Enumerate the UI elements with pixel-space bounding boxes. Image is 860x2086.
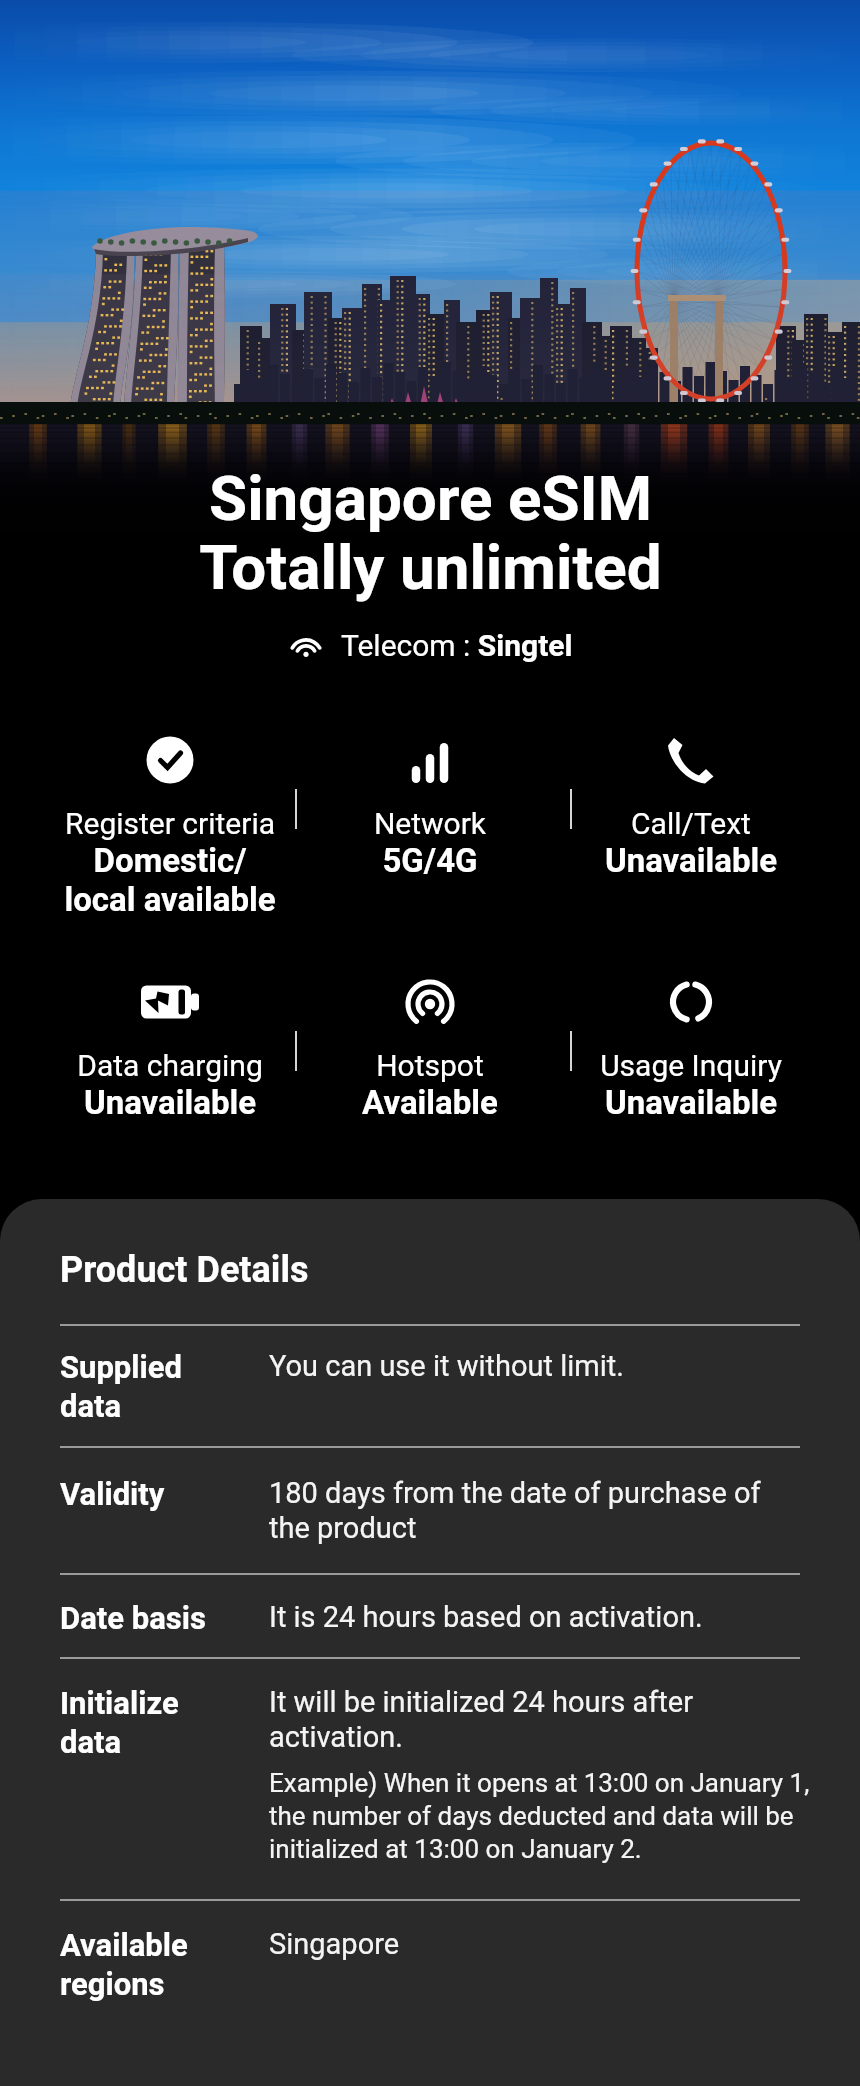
button[interactable]: Network: [290, 722, 570, 950]
button[interactable]: Usage Inquiry: [551, 964, 831, 1192]
staticText: Initialize data: [60, 1685, 269, 1760]
staticText: Data charging: [30, 1048, 310, 1083]
staticText: Singapore: [269, 1927, 400, 1961]
staticText: Telecom : Singtel: [341, 628, 573, 663]
staticText: Hotspot: [290, 1048, 570, 1083]
staticText: Usage Inquiry: [551, 1048, 831, 1083]
staticText: 180 days from the date of purchase of th…: [269, 1476, 761, 1545]
button[interactable]: Register criteria: [30, 722, 310, 950]
staticText: Validity: [60, 1476, 269, 1512]
staticText: Register criteria: [30, 806, 310, 841]
button[interactable]: Call/Text: [551, 722, 831, 950]
staticText: Call/Text: [551, 806, 831, 841]
button[interactable]: Data charging: [30, 964, 310, 1192]
staticText: It will be initialized 24 hours after ac…: [269, 1685, 694, 1754]
staticText: Available: [290, 1083, 570, 1122]
button[interactable]: Hotspot: [290, 964, 570, 1192]
staticText: Example) When it opens at 13:00 on Janua…: [269, 1768, 810, 1864]
staticText: Unavailable: [551, 1083, 831, 1122]
staticText: Date basis: [60, 1600, 269, 1636]
staticText: Singapore eSIM Totally unlimited: [199, 462, 662, 605]
staticText: Available regions: [60, 1927, 269, 2002]
staticText: It is 24 hours based on activation.: [269, 1600, 703, 1634]
staticText: You can use it without limit.: [269, 1349, 624, 1383]
staticText: Unavailable: [30, 1083, 310, 1122]
staticText: 5G/4G: [290, 841, 570, 880]
staticText: Domestic/ local available: [30, 841, 310, 919]
staticText: Network: [290, 806, 570, 841]
staticText: Supplied data: [60, 1349, 269, 1424]
staticText: Product Details: [60, 1249, 309, 1291]
staticText: Unavailable: [551, 841, 831, 880]
